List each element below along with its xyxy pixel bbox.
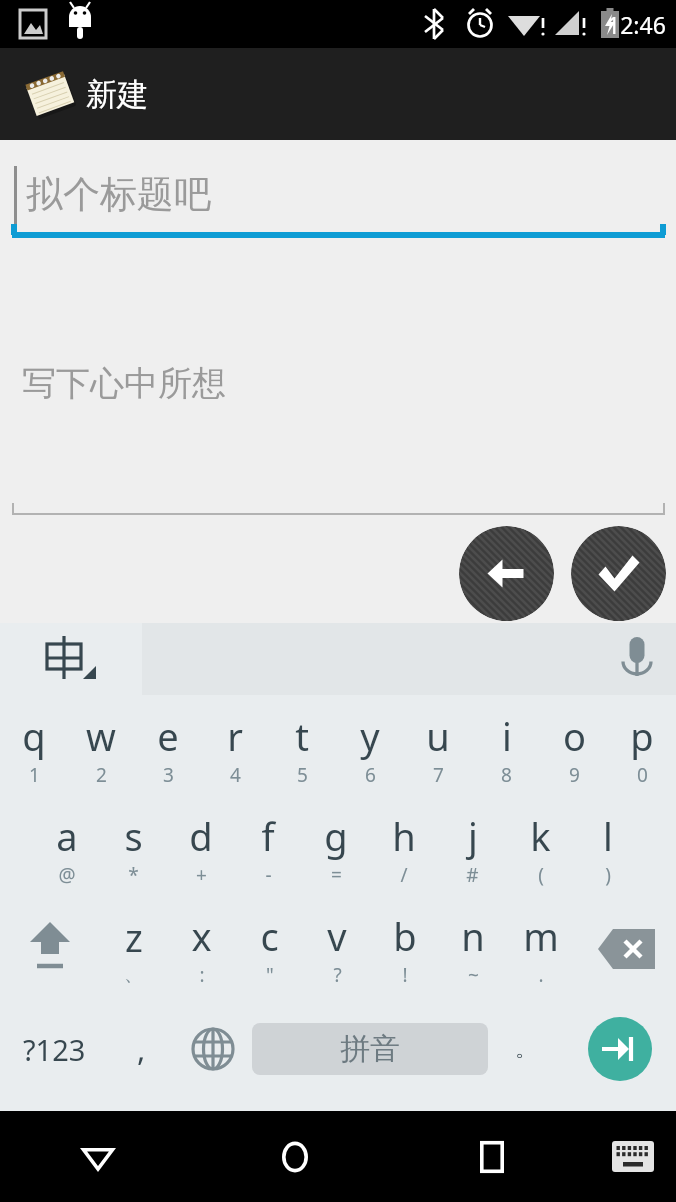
- button[interactable]: r: [201, 699, 268, 799]
- button[interactable]: Home: [196, 1111, 393, 1202]
- staticText: h: [392, 810, 416, 862]
- button[interactable]: z: [100, 899, 167, 999]
- staticText: #: [466, 862, 479, 888]
- button[interactable]: Voice input: [600, 625, 676, 695]
- staticText: =: [331, 862, 342, 888]
- button[interactable]: Input method: [30, 623, 120, 695]
- button[interactable]: ?123: [0, 999, 108, 1099]
- button[interactable]: c: [235, 899, 303, 999]
- button[interactable]: n: [439, 899, 507, 999]
- staticText: z: [125, 911, 143, 963]
- button[interactable]: o: [540, 699, 608, 799]
- staticText: 写下心中所想: [22, 362, 226, 405]
- staticText: m: [523, 910, 559, 962]
- staticText: 、: [124, 963, 143, 987]
- button[interactable]: x: [167, 899, 235, 999]
- staticText: -: [265, 862, 272, 888]
- button[interactable]: Back: [459, 526, 554, 621]
- button[interactable]: [142, 623, 676, 695]
- button[interactable]: f: [234, 799, 302, 899]
- button[interactable]: 。: [488, 999, 564, 1099]
- button[interactable]: g: [302, 799, 370, 899]
- button[interactable]: t: [268, 699, 336, 799]
- staticText: n: [461, 910, 485, 962]
- button[interactable]: 拼音: [252, 1023, 488, 1075]
- staticText: c: [260, 910, 279, 962]
- staticText: +: [196, 862, 207, 888]
- button[interactable]: u: [404, 699, 472, 799]
- button[interactable]: Save: [571, 526, 666, 621]
- staticText: (: [538, 862, 544, 888]
- button[interactable]: ,: [108, 999, 174, 1099]
- staticText: 8: [501, 762, 512, 788]
- staticText: d: [189, 810, 213, 862]
- staticText: *: [128, 862, 139, 888]
- staticText: a: [56, 810, 78, 862]
- button[interactable]: Shift: [0, 899, 100, 999]
- staticText: s: [124, 810, 143, 862]
- button[interactable]: Recents: [393, 1111, 590, 1202]
- staticText: 9: [569, 762, 580, 788]
- staticText: e: [157, 710, 179, 762]
- staticText: l: [603, 810, 613, 862]
- button[interactable]: w: [67, 699, 134, 799]
- button[interactable]: e: [134, 699, 201, 799]
- staticText: w: [86, 710, 116, 762]
- staticText: ": [266, 962, 274, 988]
- staticText: ?: [333, 962, 342, 988]
- staticText: 12:46: [607, 9, 666, 40]
- staticText: 7: [433, 762, 444, 788]
- staticText: 0: [637, 762, 648, 788]
- button[interactable]: l: [574, 799, 642, 899]
- button[interactable]: d: [167, 799, 234, 899]
- staticText: 拟个标题吧: [26, 171, 211, 218]
- button[interactable]: q: [0, 699, 67, 799]
- staticText: 4: [230, 762, 241, 788]
- button[interactable]: y: [336, 699, 404, 799]
- button[interactable]: i: [472, 699, 540, 799]
- staticText: !: [402, 962, 408, 988]
- staticText: o: [563, 710, 586, 762]
- button[interactable]: Change language: [174, 999, 252, 1099]
- staticText: i: [502, 710, 512, 762]
- staticText: ?123: [23, 1030, 86, 1069]
- staticText: t: [295, 710, 309, 762]
- staticText: .: [538, 962, 544, 988]
- button[interactable]: Hide keyboard: [590, 1111, 676, 1202]
- staticText: ~: [468, 962, 479, 988]
- staticText: y: [360, 710, 380, 762]
- staticText: 新建: [86, 75, 148, 114]
- staticText: f: [261, 810, 275, 862]
- button[interactable]: h: [370, 799, 438, 899]
- button[interactable]: v: [303, 899, 371, 999]
- staticText: 拼音: [340, 1030, 400, 1068]
- staticText: 3: [163, 762, 174, 788]
- staticText: p: [630, 710, 654, 762]
- button[interactable]: s: [100, 799, 167, 899]
- button[interactable]: Enter: [588, 1017, 652, 1081]
- button[interactable]: j: [438, 799, 506, 899]
- staticText: j: [468, 810, 478, 862]
- staticText: v: [327, 910, 347, 962]
- staticText: 1: [29, 762, 40, 788]
- staticText: ): [605, 862, 611, 888]
- staticText: q: [22, 710, 46, 762]
- button[interactable]: Back: [0, 1111, 196, 1202]
- staticText: 5: [297, 762, 308, 788]
- staticText: 2: [96, 762, 107, 788]
- staticText: 6: [365, 762, 376, 788]
- staticText: k: [530, 810, 551, 862]
- button[interactable]: Backspace: [575, 899, 676, 999]
- button[interactable]: m: [507, 899, 575, 999]
- staticText: ,: [137, 1028, 146, 1070]
- staticText: b: [393, 910, 417, 962]
- staticText: :: [199, 962, 205, 988]
- staticText: r: [227, 710, 243, 762]
- button[interactable]: b: [371, 899, 439, 999]
- staticText: @: [58, 862, 76, 888]
- button[interactable]: p: [608, 699, 676, 799]
- button[interactable]: a: [33, 799, 100, 899]
- button[interactable]: k: [506, 799, 574, 899]
- staticText: g: [324, 810, 348, 862]
- staticText: 。: [515, 1035, 537, 1063]
